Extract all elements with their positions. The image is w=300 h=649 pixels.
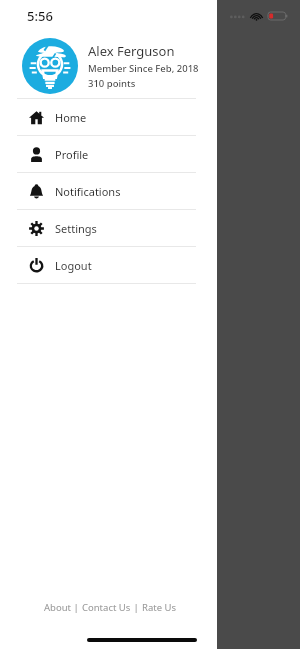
- staticText: |: [71, 601, 82, 614]
- button[interactable]: Contact Us: [82, 601, 131, 614]
- staticText: Profile: [55, 147, 89, 162]
- staticText: 5:56: [27, 7, 53, 25]
- button[interactable]: Rate Us: [142, 601, 176, 614]
- staticText: Notifications: [55, 184, 121, 199]
- staticText: Logout: [55, 258, 92, 273]
- button[interactable]: Notifications: [0, 173, 217, 209]
- button[interactable]: Logout: [0, 247, 217, 283]
- button[interactable]: About: [44, 601, 71, 614]
- staticText: Alex Ferguson: [88, 42, 175, 60]
- staticText: Settings: [55, 221, 97, 236]
- staticText: |: [131, 601, 142, 614]
- staticText: Member Since Feb, 2018: [88, 62, 199, 75]
- staticText: Information: [150, 236, 218, 252]
- staticText: 310 points: [88, 77, 136, 90]
- staticText: Home: [55, 110, 87, 125]
- button[interactable]: Home: [0, 99, 217, 135]
- button[interactable]: Settings: [0, 210, 217, 246]
- button[interactable]: Profile: [0, 136, 217, 172]
